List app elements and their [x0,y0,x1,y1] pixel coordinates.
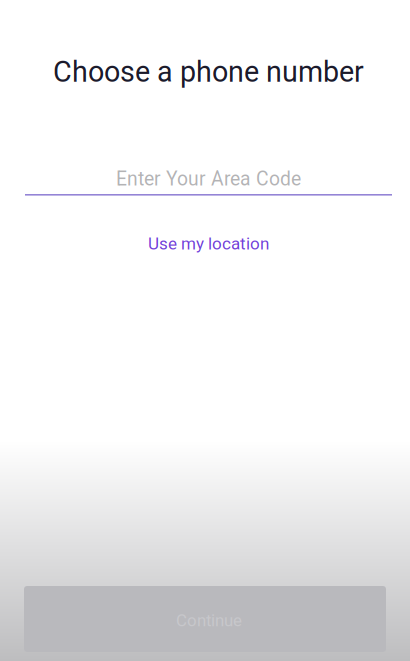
staticText: Enter Your Area Code [116,168,301,190]
button[interactable]: Enter Your Area Code [0,168,410,196]
button[interactable]: Use my location [129,234,281,254]
staticText: Use my location [148,234,269,254]
staticText: Choose a phone number [53,55,364,89]
staticText: Continue [176,611,242,630]
